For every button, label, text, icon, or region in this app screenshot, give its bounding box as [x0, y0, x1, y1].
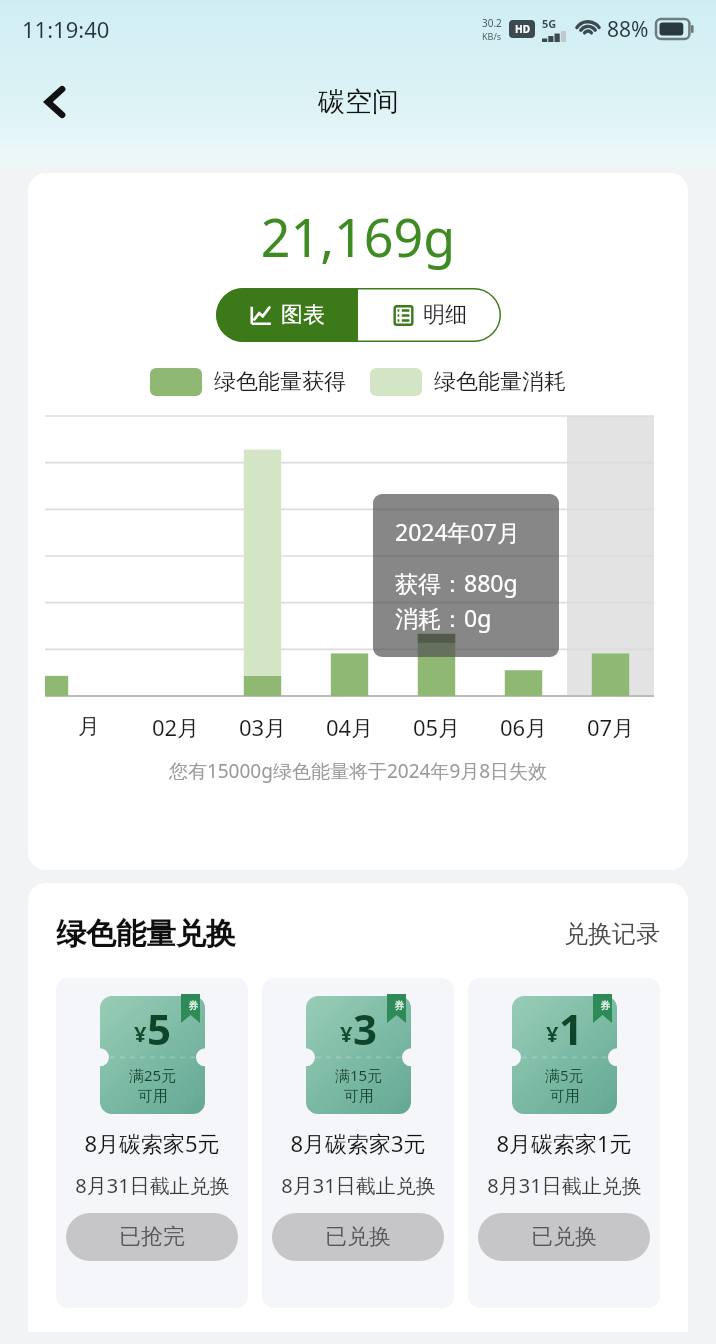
button[interactable]: 已抢完: [66, 1213, 238, 1261]
staticText: ¥: [546, 1018, 559, 1048]
button[interactable]: Back: [30, 76, 82, 128]
staticText: 可用: [138, 1087, 168, 1106]
staticText: 满15元: [335, 1065, 383, 1085]
staticText: 5: [147, 1000, 172, 1057]
staticText: 02月: [152, 712, 200, 742]
staticText: KB/s: [482, 30, 502, 42]
staticText: 已兑换: [325, 1223, 391, 1251]
staticText: 07月: [587, 712, 635, 742]
staticText: 8月碳索家5元: [84, 1128, 220, 1158]
staticText: 券: [600, 999, 610, 1012]
staticText: 03月: [239, 712, 287, 742]
button[interactable]: ¥: [56, 978, 248, 1308]
staticText: 2024年07月: [395, 516, 520, 547]
staticText: 5G: [542, 16, 557, 31]
staticText: 已抢完: [119, 1223, 185, 1251]
staticText: 8月碳索家3元: [290, 1128, 426, 1158]
staticText: 30.2: [482, 16, 502, 30]
staticText: ¥: [340, 1018, 353, 1048]
staticText: 21,169g: [28, 201, 688, 272]
staticText: 满5元: [545, 1065, 584, 1085]
button[interactable]: 图表: [216, 288, 358, 342]
staticText: 您有15000g绿色能量将于2024年9月8日失效: [28, 758, 688, 784]
staticText: HD: [515, 22, 530, 36]
staticText: 月: [78, 713, 100, 741]
staticText: 8月碳索家1元: [496, 1128, 632, 1158]
staticText: 11:19:40: [22, 14, 110, 44]
staticText: 8月31日截止兑换: [281, 1172, 436, 1199]
staticText: 绿色能量消耗: [434, 368, 566, 396]
staticText: 消耗：0g: [395, 602, 492, 633]
staticText: 绿色能量兑换: [56, 915, 236, 953]
button[interactable]: 明细: [358, 288, 501, 342]
staticText: 券: [394, 999, 404, 1012]
button[interactable]: 已兑换: [272, 1213, 444, 1261]
staticText: 明细: [423, 301, 467, 329]
staticText: 可用: [344, 1087, 374, 1106]
staticText: 获得：880g: [395, 567, 518, 598]
button[interactable]: 已兑换: [478, 1213, 650, 1261]
staticText: 可用: [550, 1087, 580, 1106]
staticText: 06月: [500, 712, 548, 742]
staticText: 1: [559, 1000, 584, 1057]
staticText: 04月: [326, 712, 374, 742]
staticText: 8月31日截止兑换: [487, 1172, 642, 1199]
staticText: 3: [353, 1000, 378, 1057]
staticText: 兑换记录: [564, 919, 660, 949]
staticText: 8月31日截止兑换: [75, 1172, 230, 1199]
button[interactable]: ¥: [262, 978, 454, 1308]
button[interactable]: 兑换记录: [564, 919, 660, 949]
staticText: 券: [188, 999, 198, 1012]
staticText: ¥: [134, 1018, 147, 1048]
staticText: 碳空间: [318, 85, 399, 119]
staticText: 满25元: [129, 1065, 177, 1085]
staticText: 绿色能量获得: [214, 368, 346, 396]
staticText: 05月: [413, 712, 461, 742]
staticText: 图表: [281, 301, 325, 329]
button[interactable]: ¥: [468, 978, 660, 1308]
staticText: 88%: [607, 15, 649, 44]
staticText: 已兑换: [531, 1223, 597, 1251]
